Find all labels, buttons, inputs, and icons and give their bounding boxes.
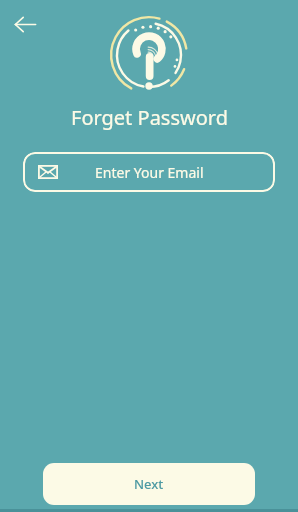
staticText: Enter Your Email — [95, 163, 204, 182]
staticText: Next — [134, 475, 164, 493]
button[interactable]: Next — [43, 463, 255, 505]
staticText: Forget Password — [71, 104, 228, 131]
button[interactable]: Enter Your Email — [23, 152, 275, 192]
button[interactable]: Back — [8, 7, 42, 41]
